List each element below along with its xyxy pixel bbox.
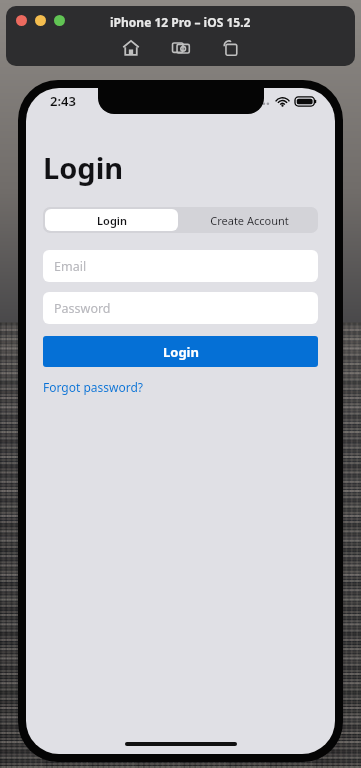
staticText: iPhone 12 Pro – iOS 15.2 bbox=[110, 14, 251, 30]
staticText: Forgot password? bbox=[43, 379, 144, 395]
button[interactable]: Home bbox=[119, 36, 143, 60]
button[interactable] bbox=[16, 15, 27, 26]
staticText: Login bbox=[163, 343, 199, 361]
button[interactable] bbox=[35, 15, 46, 26]
button[interactable]: Login bbox=[45, 209, 178, 231]
button[interactable]: Forgot password? bbox=[43, 377, 144, 397]
button[interactable]: Screenshot bbox=[169, 36, 193, 60]
button[interactable]: Create Account bbox=[180, 207, 318, 233]
button[interactable]: Rotate bbox=[219, 36, 243, 60]
staticText: 2:43 bbox=[50, 92, 76, 110]
button[interactable] bbox=[54, 15, 65, 26]
button[interactable]: Email bbox=[43, 250, 318, 282]
staticText: Email bbox=[54, 258, 87, 275]
staticText: Create Account bbox=[210, 213, 289, 228]
staticText: Password bbox=[54, 300, 111, 317]
staticText: Login bbox=[43, 148, 124, 187]
button[interactable]: Password bbox=[43, 292, 318, 324]
staticText: Login bbox=[97, 213, 127, 228]
button[interactable]: Login bbox=[43, 336, 318, 367]
